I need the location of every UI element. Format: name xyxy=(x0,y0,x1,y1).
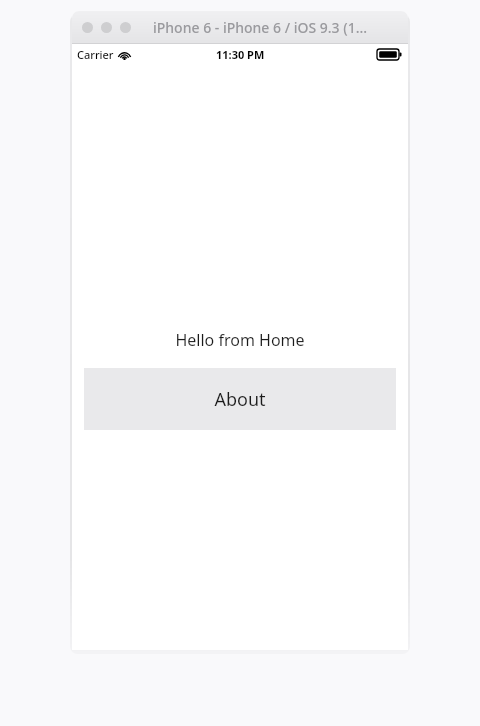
button[interactable]: Zoom window xyxy=(120,22,131,33)
button[interactable]: Minimize window xyxy=(101,22,112,33)
staticText: Hello from Home xyxy=(72,329,408,351)
staticText: 11:30 PM xyxy=(216,47,265,62)
staticText: Carrier xyxy=(77,47,114,62)
button[interactable]: Close window xyxy=(82,22,93,33)
staticText: About xyxy=(214,387,266,412)
staticText: iPhone 6 - iPhone 6 / iOS 9.3 (1… xyxy=(92,18,408,37)
button[interactable]: About xyxy=(84,368,396,430)
